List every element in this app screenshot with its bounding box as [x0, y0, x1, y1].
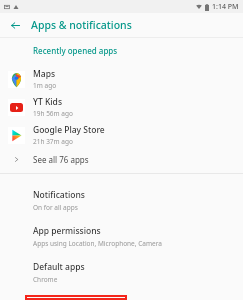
staticText: 21h 37m ago: [33, 137, 73, 146]
button[interactable]: Special app access: [25, 295, 127, 300]
staticText: Notifications: [33, 189, 85, 201]
staticText: Google Play Store: [33, 124, 105, 136]
button[interactable]: Maps: [0, 65, 243, 93]
staticText: 19h 56m ago: [33, 109, 73, 118]
button[interactable]: App permissions: [0, 221, 243, 257]
staticText: YT Kids: [33, 96, 63, 108]
staticText: Apps & notifications: [31, 18, 132, 32]
staticText: On for all apps: [33, 203, 78, 212]
staticText: 1:14 PM: [212, 2, 239, 12]
button[interactable]: Google Play Store: [0, 121, 243, 149]
button[interactable]: Back: [6, 16, 24, 34]
staticText: See all 76 apps: [33, 154, 89, 165]
staticText: Apps using Location, Microphone, Camera: [33, 239, 162, 248]
button[interactable]: Notifications: [0, 185, 243, 221]
button[interactable]: Default apps: [0, 257, 243, 293]
staticText: 1m ago: [33, 81, 57, 90]
staticText: Maps: [33, 68, 56, 80]
button[interactable]: See all 76 apps: [0, 149, 243, 169]
staticText: Chrome: [33, 275, 58, 284]
staticText: Recently opened apps: [33, 45, 118, 56]
button[interactable]: YT Kids: [0, 93, 243, 121]
staticText: App permissions: [33, 225, 101, 237]
staticText: Default apps: [33, 261, 85, 273]
